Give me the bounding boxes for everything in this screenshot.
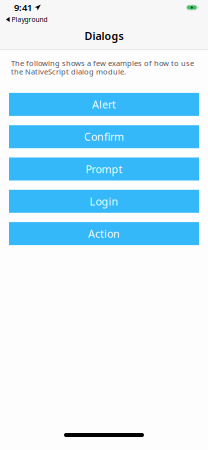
staticText: 9:41 bbox=[14, 1, 32, 14]
button[interactable]: Login bbox=[9, 190, 199, 213]
button[interactable]: Confirm bbox=[9, 125, 199, 148]
staticText: Login bbox=[89, 194, 118, 208]
staticText: Dialogs bbox=[84, 29, 123, 43]
staticText: Prompt bbox=[85, 162, 122, 176]
staticText: The following shows a few examples of ho… bbox=[11, 58, 194, 68]
button[interactable]: Action bbox=[9, 222, 199, 245]
staticText: Playground bbox=[12, 15, 48, 24]
staticText: Alert bbox=[92, 97, 116, 111]
staticText: Action bbox=[88, 226, 120, 241]
button[interactable]: Prompt bbox=[9, 157, 199, 180]
staticText: Confirm bbox=[84, 130, 124, 144]
button[interactable]: Alert bbox=[9, 93, 199, 116]
button[interactable]: Playground bbox=[0, 15, 54, 24]
staticText: the NativeScript dialog module. bbox=[11, 67, 126, 76]
